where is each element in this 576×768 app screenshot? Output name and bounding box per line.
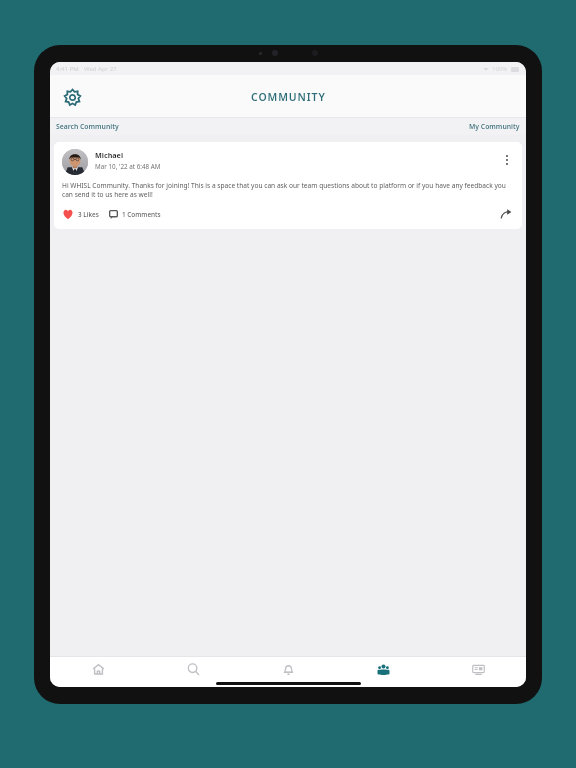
button[interactable]: My Community [463, 120, 526, 133]
button[interactable]: Notifications [241, 657, 336, 682]
button[interactable]: Feed [431, 657, 526, 682]
staticText: 3 Likes [78, 210, 99, 219]
button[interactable]: 1 Comments [109, 209, 161, 220]
staticText: 100% [492, 65, 508, 73]
staticText: Michael [95, 150, 124, 160]
button[interactable]: Michael [54, 142, 522, 229]
staticText: Search Community [56, 122, 119, 131]
button[interactable]: Community [336, 657, 431, 682]
staticText: My Community [469, 122, 520, 131]
staticText: Wed Apr 27 [84, 65, 117, 73]
button[interactable]: Home [50, 657, 146, 682]
button[interactable]: Settings [60, 85, 84, 109]
staticText: COMMUNITY [251, 90, 326, 104]
button[interactable]: Search [146, 657, 241, 682]
staticText: 4:41 PM [56, 65, 79, 73]
staticText: Hi WHISL Community. Thanks for joining! … [62, 181, 514, 199]
staticText: Mar 10, '22 at 6:48 AM [95, 162, 161, 171]
staticText: 1 Comments [122, 210, 161, 219]
button[interactable]: More options [500, 149, 514, 171]
button[interactable]: Search Community [50, 120, 125, 133]
button[interactable]: 3 Likes [62, 207, 99, 221]
button[interactable]: Share [498, 206, 514, 222]
